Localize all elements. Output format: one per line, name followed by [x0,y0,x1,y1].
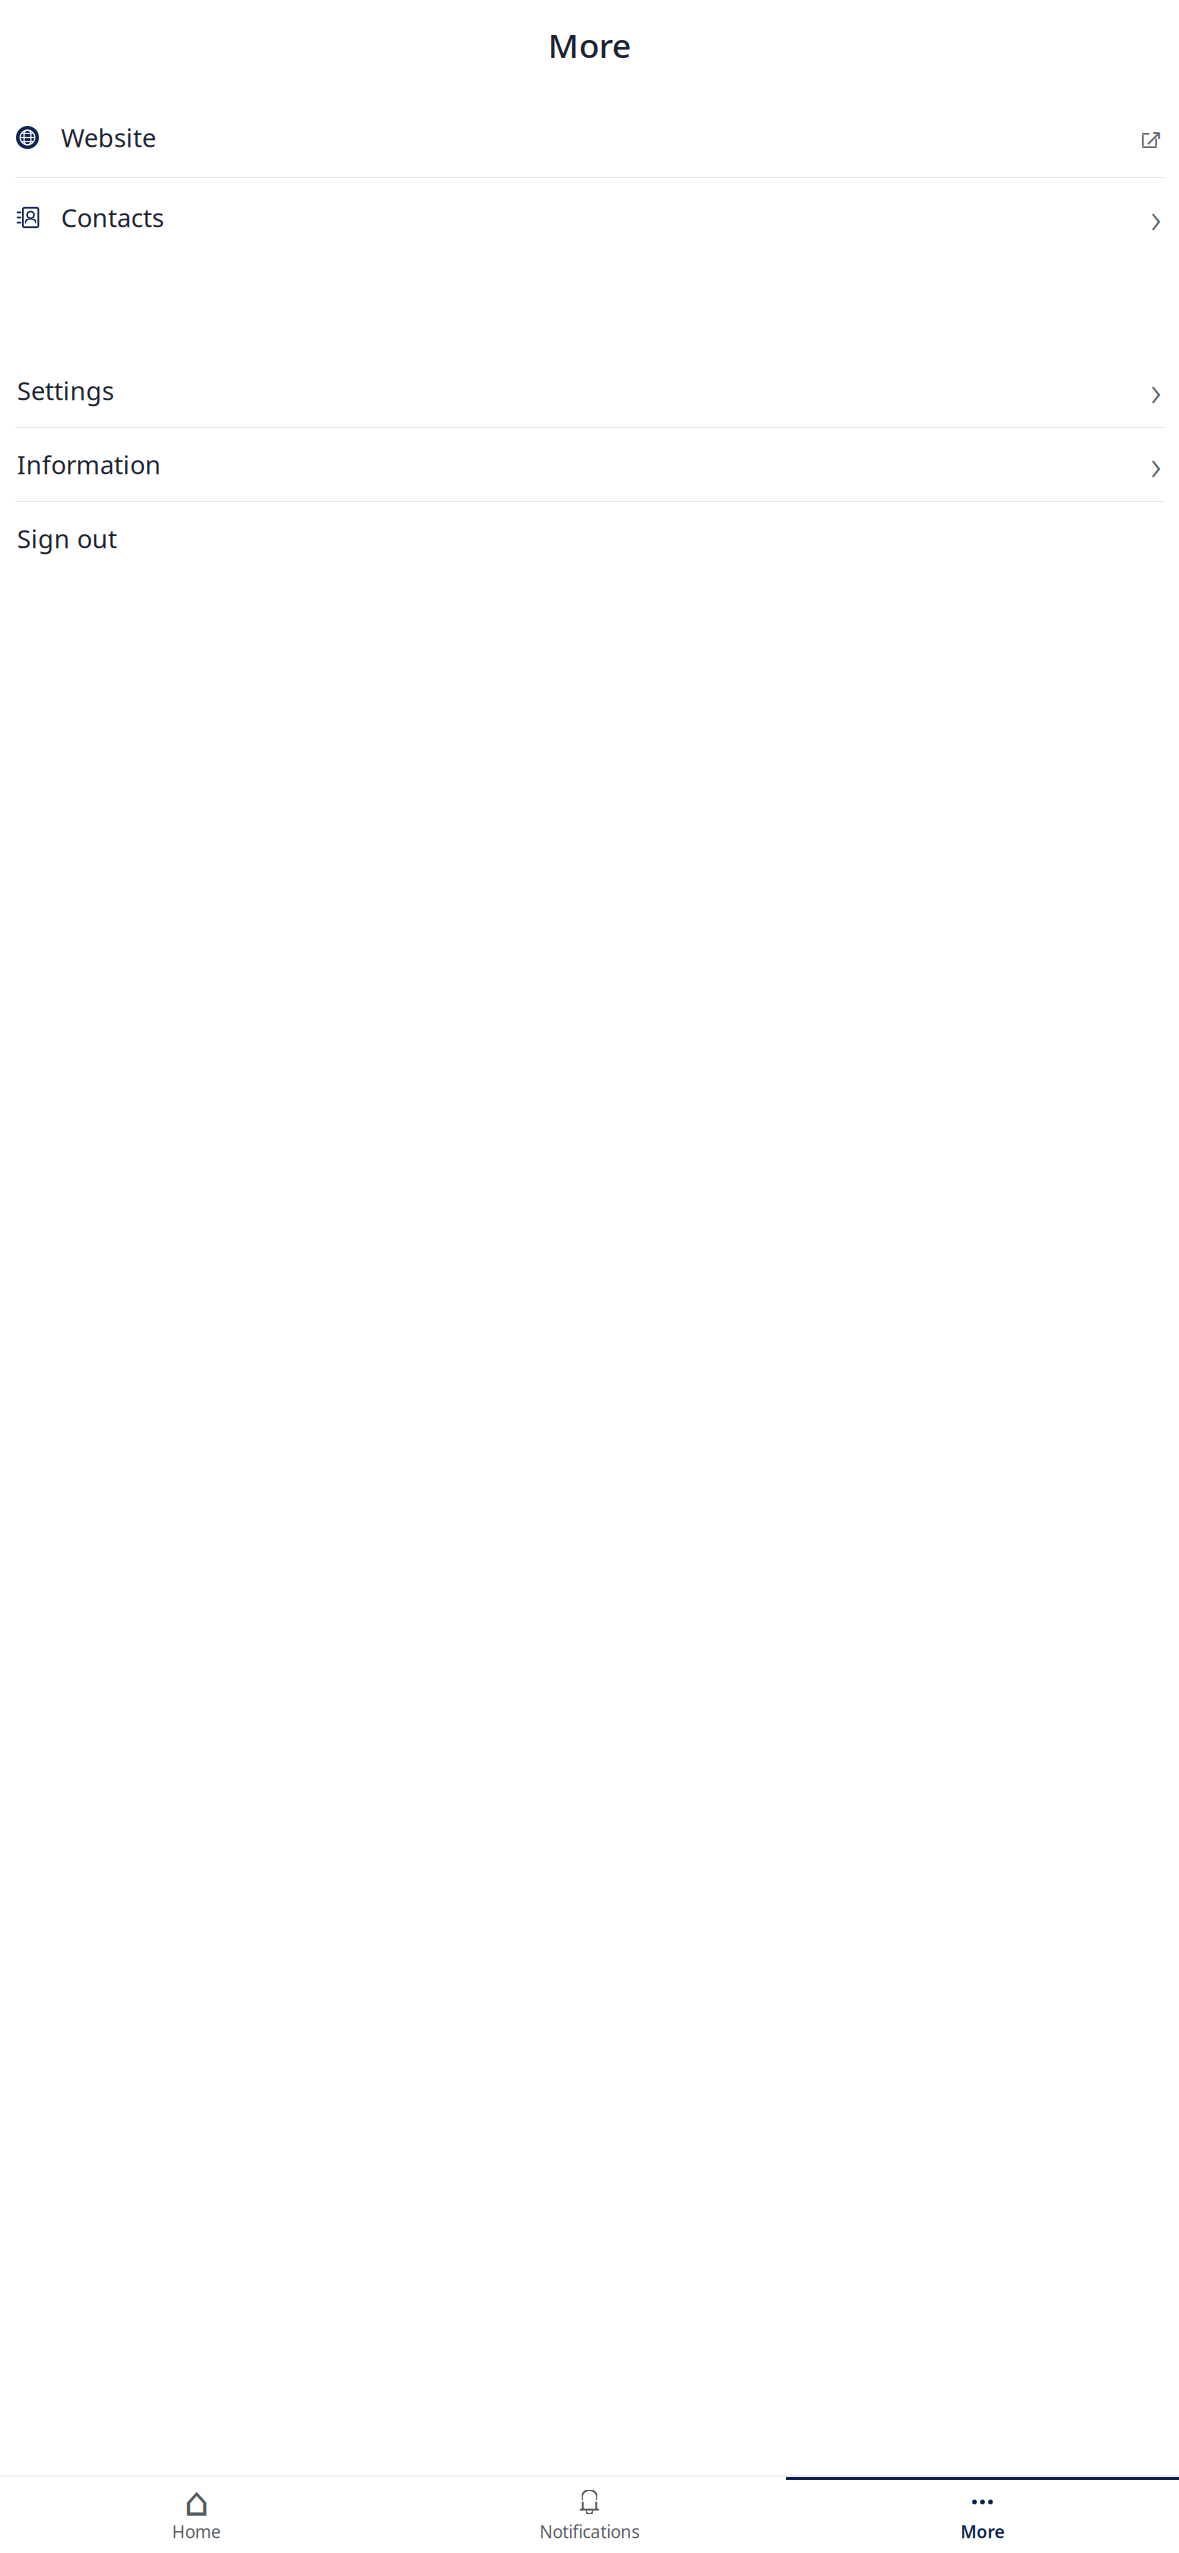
staticText: More [548,23,631,67]
staticText: Sign out [17,522,117,555]
button[interactable]: Notifications [393,2477,786,2553]
staticText: › [1150,363,1161,418]
button[interactable]: Sign out [0,502,1179,575]
staticText: ⌂ [184,2479,209,2525]
button[interactable]: Settings [0,354,1179,427]
staticText: › [1150,190,1161,245]
staticText: Settings [17,374,114,407]
staticText: Notifications [539,2520,639,2543]
button[interactable]: ⌂ [0,2477,393,2553]
staticText: Contacts [61,201,164,234]
button[interactable]: Information [0,428,1179,501]
staticText: Home [172,2520,221,2543]
staticText: Information [17,448,161,481]
staticText: ↗ [1144,125,1163,150]
staticText: Website [61,121,156,154]
button[interactable]: Contacts [0,178,1179,257]
button[interactable]: More [786,2477,1179,2553]
staticText: › [1150,437,1161,492]
button[interactable]: Website [0,98,1179,177]
staticText: More [960,2520,1004,2543]
